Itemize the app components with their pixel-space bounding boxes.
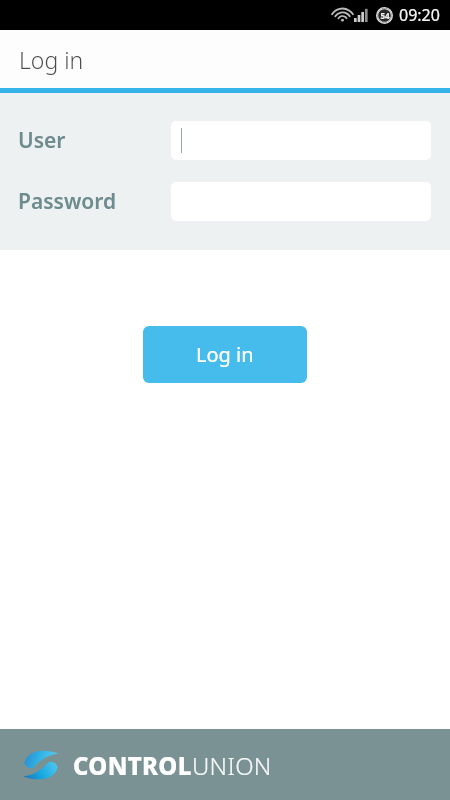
staticText: Password (18, 187, 117, 216)
staticText: UNION (192, 749, 272, 782)
staticText: Log in (196, 341, 254, 368)
staticText: CONTROL (73, 749, 192, 782)
button[interactable] (171, 121, 431, 160)
staticText: User (18, 126, 66, 155)
button[interactable]: Log in (143, 326, 307, 383)
staticText: 54 (380, 10, 390, 21)
staticText: Log in (19, 44, 84, 75)
staticText: 09:20 (399, 4, 440, 26)
